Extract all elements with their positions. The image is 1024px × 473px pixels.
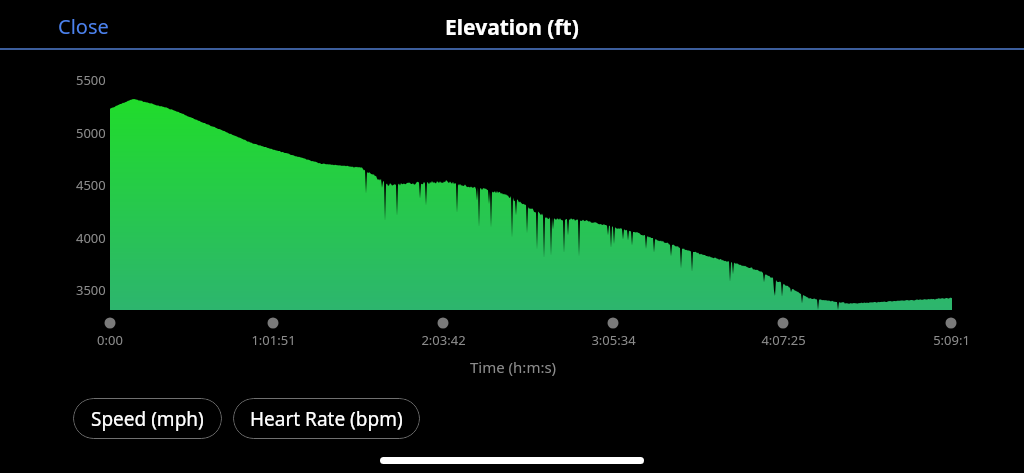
staticText: 1:01:51: [251, 331, 296, 349]
staticText: 2:03:42: [421, 331, 466, 349]
staticText: 5000: [76, 124, 106, 142]
staticText: Close: [58, 13, 109, 40]
staticText: 3500: [76, 281, 106, 299]
staticText: Elevation (ft): [445, 13, 579, 42]
staticText: 5:09:1: [933, 331, 970, 349]
staticText: Time (h:m:s): [470, 357, 557, 377]
staticText: 4000: [76, 229, 106, 247]
button[interactable]: Close: [58, 9, 150, 43]
staticText: 0:00: [97, 331, 123, 349]
staticText: 4:07:25: [761, 331, 806, 349]
staticText: Speed (mph): [91, 406, 204, 432]
other: Home indicator: [380, 457, 644, 464]
staticText: 4500: [76, 176, 106, 194]
button[interactable]: Speed (mph): [73, 398, 222, 439]
staticText: 5500: [76, 71, 106, 89]
button[interactable]: Heart Rate (bpm): [233, 398, 420, 439]
staticText: Heart Rate (bpm): [250, 406, 403, 432]
staticText: 3:05:34: [591, 331, 636, 349]
